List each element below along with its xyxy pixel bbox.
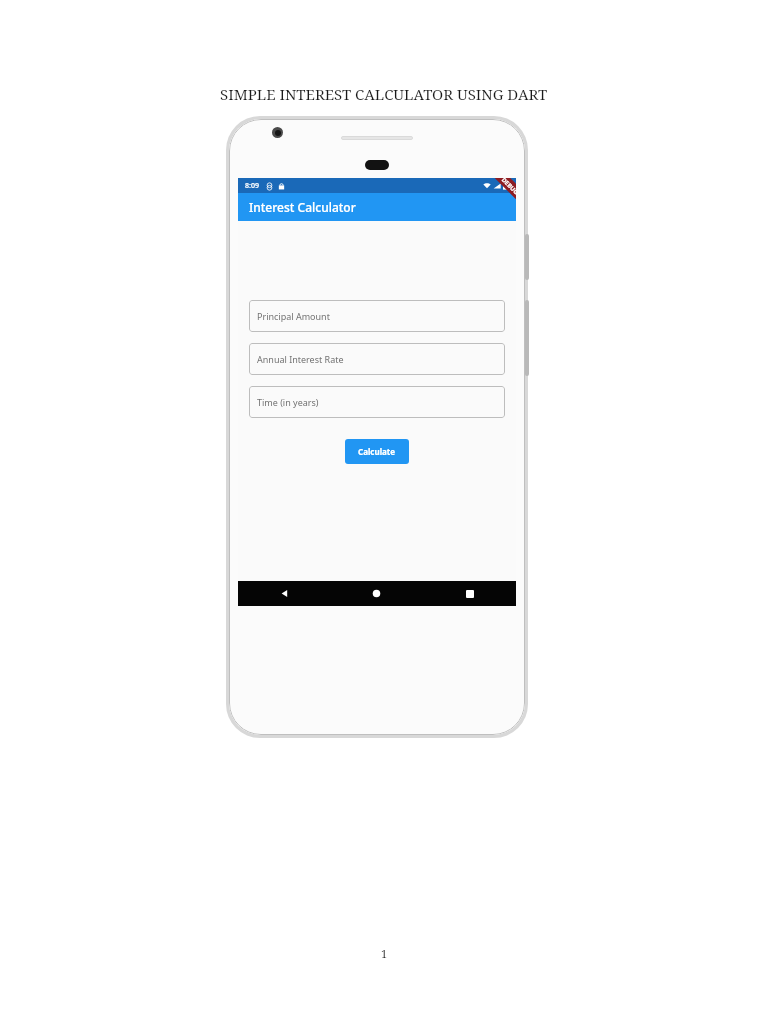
button[interactable]: Principal Amount [249,300,505,332]
staticText: Time (in years) [257,396,319,408]
staticText: 1 [381,946,388,961]
button[interactable]: Home [330,581,423,606]
button[interactable]: Time (in years) [249,386,505,418]
button[interactable]: Interest Calculator [249,199,356,215]
staticText: 8:09 [245,181,259,191]
button[interactable]: Annual Interest Rate [249,343,505,375]
button[interactable]: Back [238,581,330,606]
button[interactable]: Calculate [345,439,409,464]
staticText: Annual Interest Rate [257,353,344,365]
staticText: Calculate [358,446,396,457]
staticText: Interest Calculator [249,199,356,215]
button[interactable]: Recent apps [423,581,516,606]
staticText: SIMPLE INTEREST CALCULATOR USING DART [220,84,548,104]
staticText: DEBUG [500,178,516,196]
staticText: Principal Amount [257,310,330,322]
